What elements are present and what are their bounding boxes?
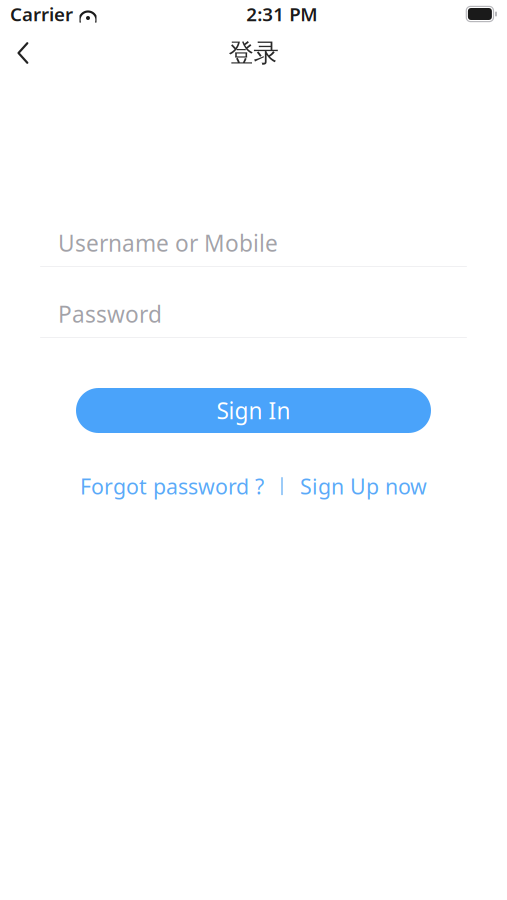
staticText: Sign Up now	[300, 472, 427, 500]
button[interactable]: Sign In	[76, 388, 431, 433]
staticText: Forgot password ?	[80, 472, 264, 500]
staticText: 登录	[228, 37, 278, 68]
button[interactable]: Sign Up now	[294, 466, 433, 506]
staticText: 2:31 PM	[246, 2, 317, 26]
staticText: Password	[58, 299, 162, 329]
button[interactable]: Back	[0, 31, 46, 75]
staticText: Username or Mobile	[58, 228, 278, 258]
staticText: Carrier	[10, 2, 73, 26]
staticText: Sign In	[216, 395, 290, 425]
button[interactable]: Forgot password ?	[74, 466, 270, 506]
